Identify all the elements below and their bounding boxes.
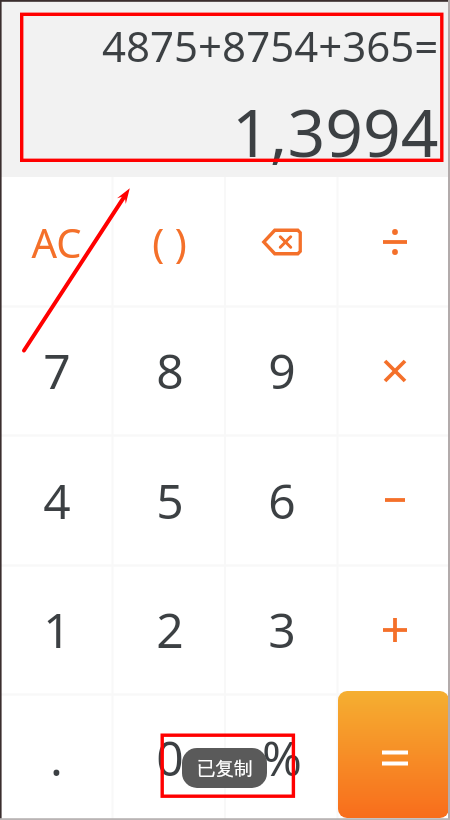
button[interactable]: 0 (113, 694, 226, 820)
staticText: AC (31, 215, 82, 269)
button[interactable]: % (225, 694, 338, 820)
staticText: ( ) (152, 215, 187, 269)
button[interactable]: 7 (0, 306, 113, 435)
staticText: 5 (156, 468, 184, 533)
button[interactable]: Divide (338, 177, 450, 306)
staticText: 6 (268, 468, 296, 533)
button[interactable]: 2 (113, 565, 226, 694)
button[interactable]: 9 (225, 306, 338, 435)
staticText: 4 (43, 468, 71, 533)
button[interactable]: Equals (338, 691, 449, 818)
button[interactable]: 5 (113, 435, 226, 565)
button[interactable]: AC (0, 177, 113, 306)
staticText: 7 (43, 338, 71, 403)
button[interactable]: 6 (225, 435, 338, 565)
button[interactable]: Backspace (225, 177, 338, 306)
button[interactable]: . (0, 694, 113, 820)
button[interactable]: 3 (225, 565, 338, 694)
button[interactable]: ( ) (113, 177, 226, 306)
staticText: % (262, 725, 302, 790)
button[interactable]: Plus (338, 565, 450, 694)
staticText: . (50, 725, 63, 790)
staticText: 8 (156, 338, 184, 403)
staticText: 3 (268, 597, 296, 662)
staticText: 已复制 (197, 757, 253, 780)
staticText: 4875+8754+365= (102, 17, 439, 74)
staticText: 9 (268, 338, 296, 403)
button[interactable]: 1 (0, 565, 113, 694)
staticText: 1,3994 (232, 86, 439, 166)
button[interactable]: 8 (113, 306, 226, 435)
staticText: 2 (156, 597, 184, 662)
staticText: 0 (156, 725, 184, 790)
button[interactable]: Minus (338, 435, 450, 565)
staticText: 1 (43, 597, 71, 662)
button[interactable]: Multiply (338, 306, 450, 435)
button[interactable]: 4 (0, 435, 113, 565)
